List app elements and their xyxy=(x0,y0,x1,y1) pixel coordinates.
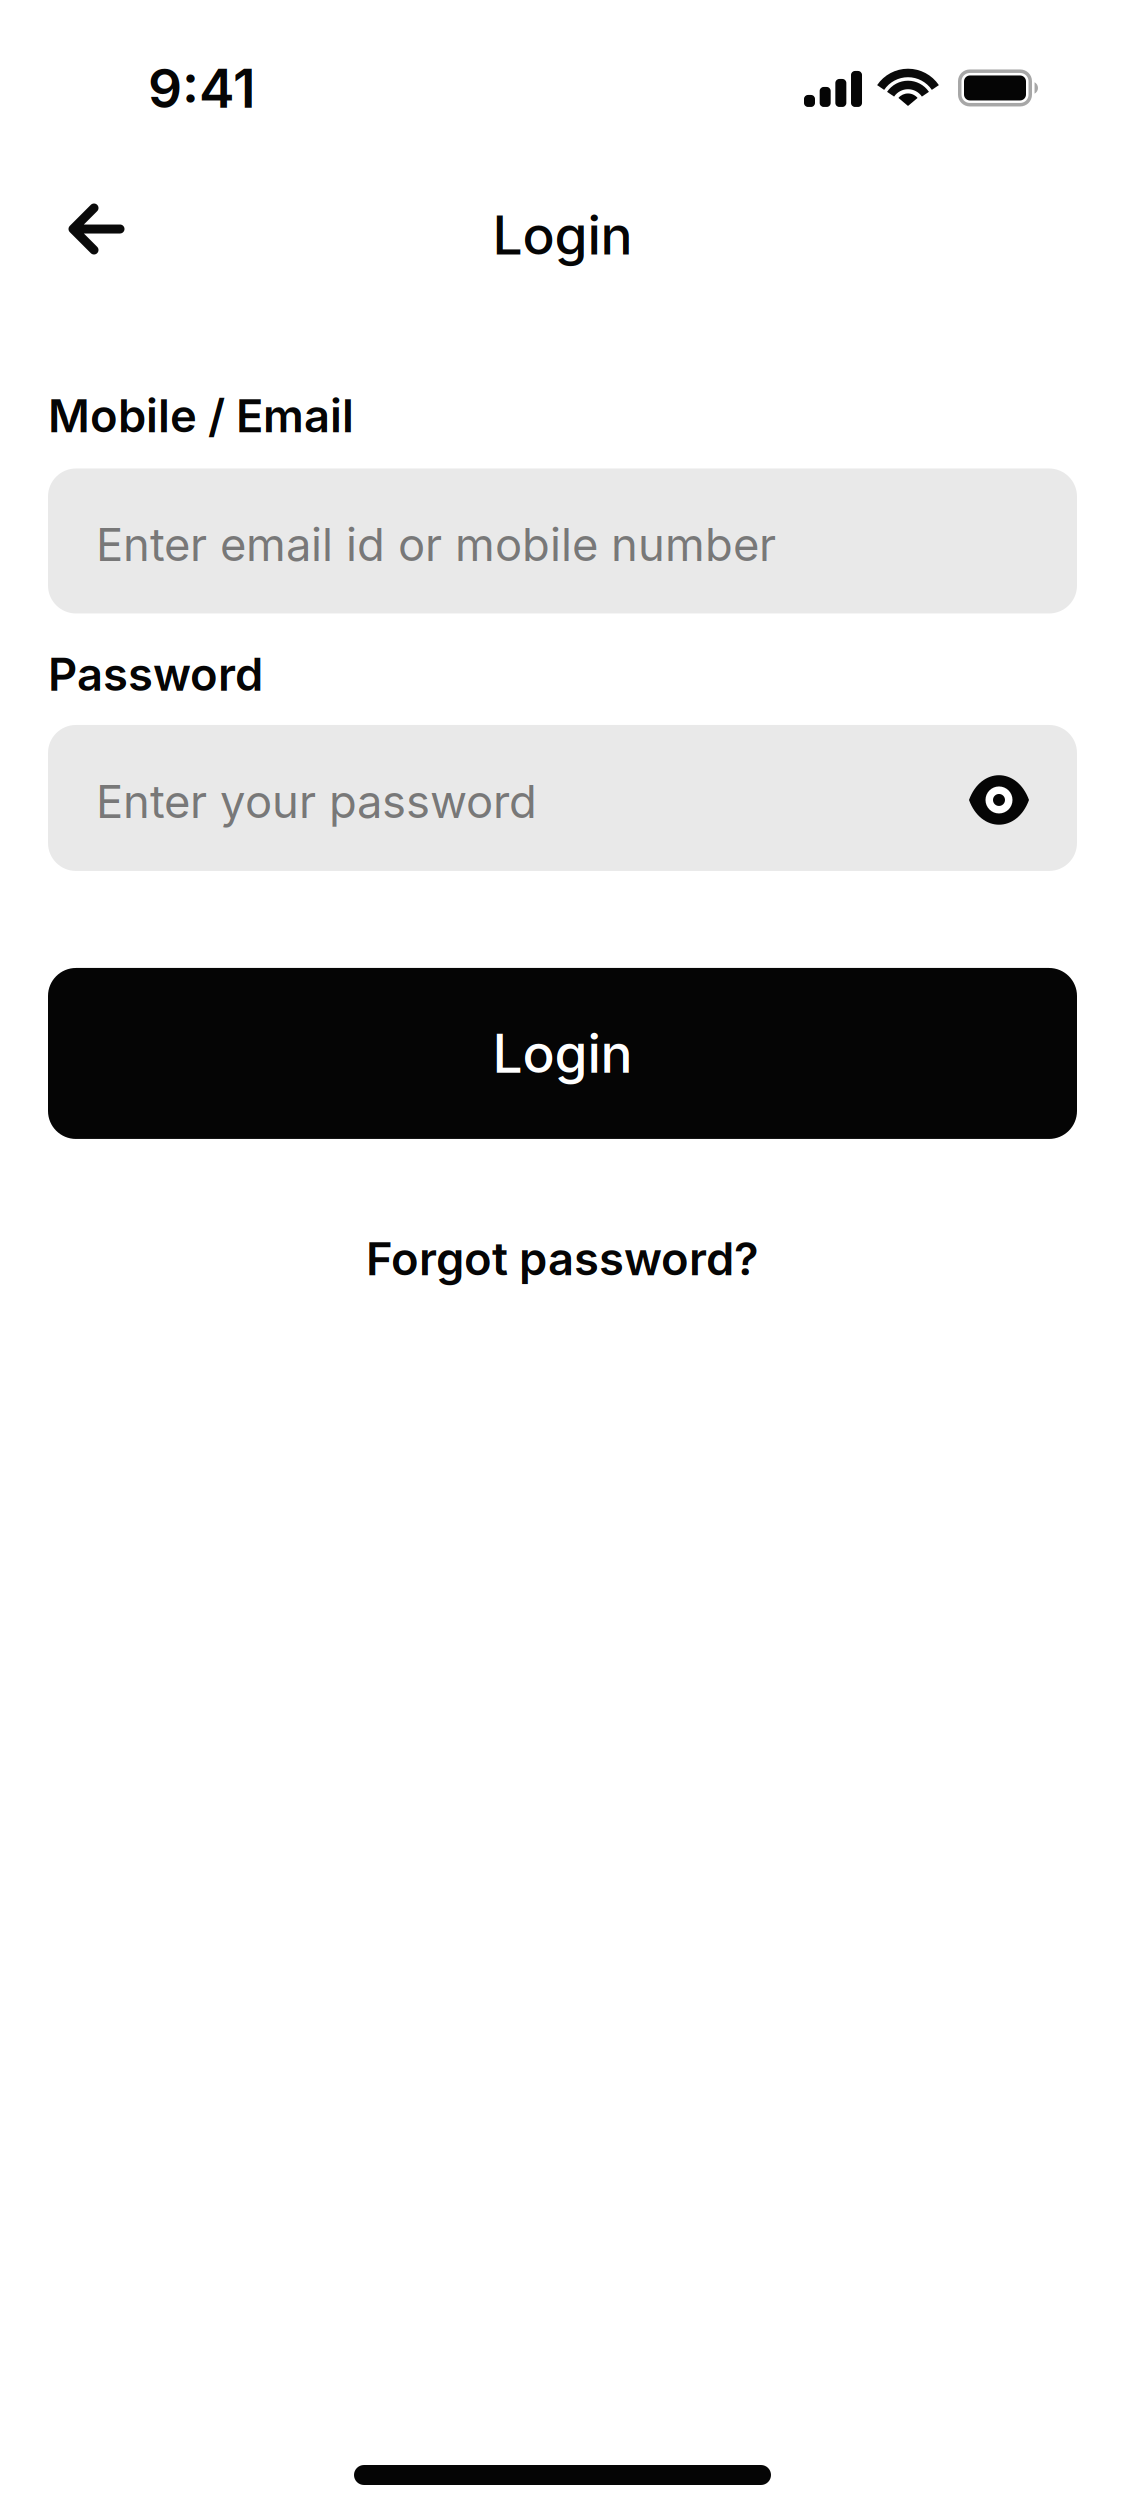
staticText: Login xyxy=(492,1022,632,1085)
button[interactable] xyxy=(2,204,124,254)
button[interactable]: Login xyxy=(48,968,1077,1139)
button[interactable]: Forgot password? xyxy=(366,1232,759,1285)
staticText: Forgot password? xyxy=(366,1232,759,1285)
staticText: Mobile / Email xyxy=(48,389,354,442)
staticText: 9:41 xyxy=(148,57,256,120)
staticText: Enter your password xyxy=(96,775,537,828)
button[interactable] xyxy=(969,773,1029,823)
staticText: Login xyxy=(492,203,632,266)
staticText: Enter email id or mobile number xyxy=(96,518,776,571)
staticText: Password xyxy=(48,647,263,701)
